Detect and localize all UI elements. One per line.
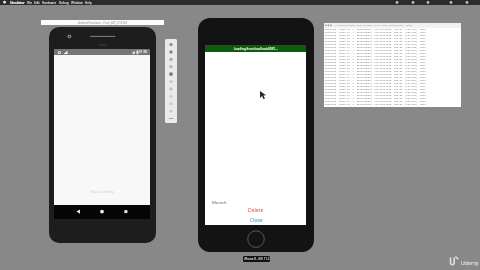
- staticText: 11:16: [139, 50, 148, 54]
- staticText: Bundling index.io 3 development non-mini…: [325, 61, 462, 64]
- staticText: Bundling index.io 2 development non-mini…: [325, 73, 462, 76]
- staticText: Bundling index.io 1 development non-mini…: [325, 49, 462, 52]
- button[interactable]: Delete: [248, 207, 264, 214]
- button[interactable]: Window: [71, 1, 83, 5]
- staticText: Udemy: [461, 259, 479, 266]
- button[interactable]: Simulator: [10, 1, 25, 5]
- staticText: Bundling index.io 1 development non-mini…: [325, 34, 462, 37]
- staticText: iPhone 8 - iOS 11.2: [244, 257, 270, 261]
- button[interactable]: Debug: [59, 1, 69, 5]
- staticText: Bundling index.io 3 development non-mini…: [325, 91, 462, 94]
- staticText: ● ● ● ls scripts/packager React Packager…: [325, 24, 413, 27]
- staticText: Bundling index.io 2 development non-mini…: [325, 88, 462, 91]
- staticText: Bundling index.io 4 development non-mini…: [325, 97, 462, 100]
- staticText: Bundling index.io 4 development non-mini…: [325, 37, 462, 40]
- staticText: Bundling index.io 1 development non-mini…: [325, 79, 462, 82]
- staticText: Now Loading: [90, 189, 114, 194]
- staticText: Android Emulator - Pixel_API_27:5554: [78, 21, 127, 25]
- staticText: Bundling index.io 3 development non-mini…: [325, 46, 462, 49]
- other: Emulator toolbar: [165, 39, 177, 123]
- staticText: Bundling index.io 4 development non-mini…: [325, 67, 462, 70]
- staticText: Bundling index.io 1 development non-mini…: [325, 64, 462, 67]
- button[interactable]: Close: [250, 217, 263, 224]
- staticText: Bundling index.io 2 development non-mini…: [325, 40, 462, 43]
- button[interactable]: Edit: [34, 1, 40, 5]
- staticText: Bundling index.io 2 development non-mini…: [325, 70, 462, 73]
- staticText: Bundling index.io 3 development non-mini…: [325, 106, 462, 107]
- button[interactable]: Munich: [212, 200, 227, 206]
- staticText: Bundling index.io 2 development non-mini…: [325, 55, 462, 58]
- staticText: Bundling index.io 2 development non-mini…: [325, 43, 462, 46]
- staticText: Bundling index.io 3 development non-mini…: [325, 31, 462, 34]
- staticText: Bundling index.io 4 development non-mini…: [325, 52, 462, 55]
- staticText: Bundling index.io 4 development non-mini…: [325, 82, 462, 85]
- button[interactable]: Help: [85, 1, 92, 5]
- staticText: Bundling index.io 2 development non-mini…: [325, 100, 462, 103]
- staticText: Bundling index.io 1 development non-mini…: [325, 94, 462, 97]
- staticText: Bundling index.io 2 development non-mini…: [325, 103, 462, 106]
- staticText: Bundling index.io 2 development non-mini…: [325, 28, 462, 31]
- button[interactable]: File: [27, 1, 32, 5]
- staticText: Loading from localhost:8081…: [234, 47, 278, 51]
- button[interactable]: Hardware: [42, 1, 57, 5]
- staticText: Bundling index.io 2 development non-mini…: [325, 58, 462, 61]
- staticText: Bundling index.io 3 development non-mini…: [325, 76, 462, 79]
- staticText: Bundling index.io 2 development non-mini…: [325, 85, 462, 88]
